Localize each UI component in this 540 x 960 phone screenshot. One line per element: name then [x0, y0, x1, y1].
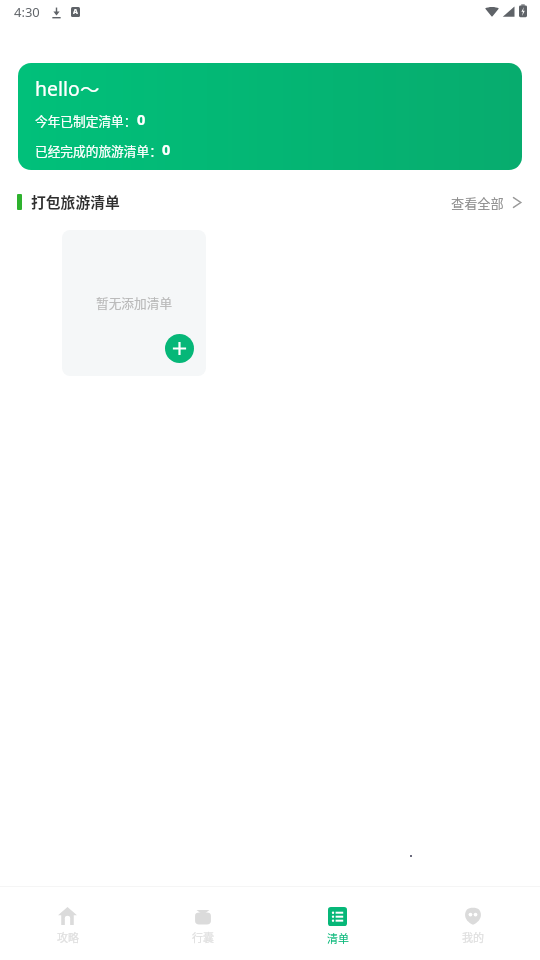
staticText: 查看全部: [451, 194, 504, 210]
staticText: 攻略: [57, 929, 79, 945]
staticText: A: [73, 7, 78, 17]
staticText: ～: [80, 74, 100, 102]
button[interactable]: hello: [18, 63, 522, 170]
button[interactable]: 我的: [405, 887, 540, 960]
staticText: 我的: [462, 929, 484, 945]
staticText: 今年已制定清单：: [35, 111, 137, 129]
button[interactable]: 查看全部: [443, 191, 530, 213]
staticText: 打包旅游清单: [31, 191, 120, 212]
staticText: 4:30: [14, 3, 40, 21]
button[interactable]: 攻略: [0, 887, 135, 960]
button[interactable]: Add list: [165, 334, 194, 363]
staticText: 行囊: [192, 929, 214, 945]
staticText: 已经完成的旅游清单：: [35, 141, 162, 159]
staticText: 0: [137, 109, 146, 129]
button[interactable]: 行囊: [135, 887, 270, 960]
staticText: 0: [162, 139, 171, 159]
staticText: 清单: [327, 930, 349, 946]
button[interactable]: 清单: [270, 887, 405, 960]
staticText: hello: [35, 75, 80, 101]
button[interactable]: 暂无添加清单: [62, 230, 206, 376]
staticText: 暂无添加清单: [96, 293, 173, 311]
